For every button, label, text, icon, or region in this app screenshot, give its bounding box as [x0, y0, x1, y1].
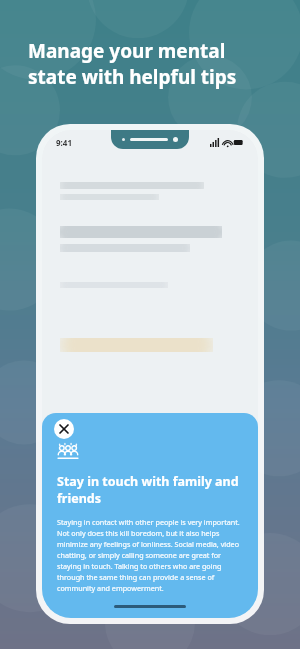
button[interactable]: Close [54, 419, 74, 439]
staticText: Stay in touch with family and friends [57, 473, 243, 507]
staticText: Manage your mental state with helpful ti… [28, 38, 237, 90]
staticText: Staying in contact with other people is … [57, 517, 243, 593]
staticText: 9:41 [56, 137, 72, 148]
